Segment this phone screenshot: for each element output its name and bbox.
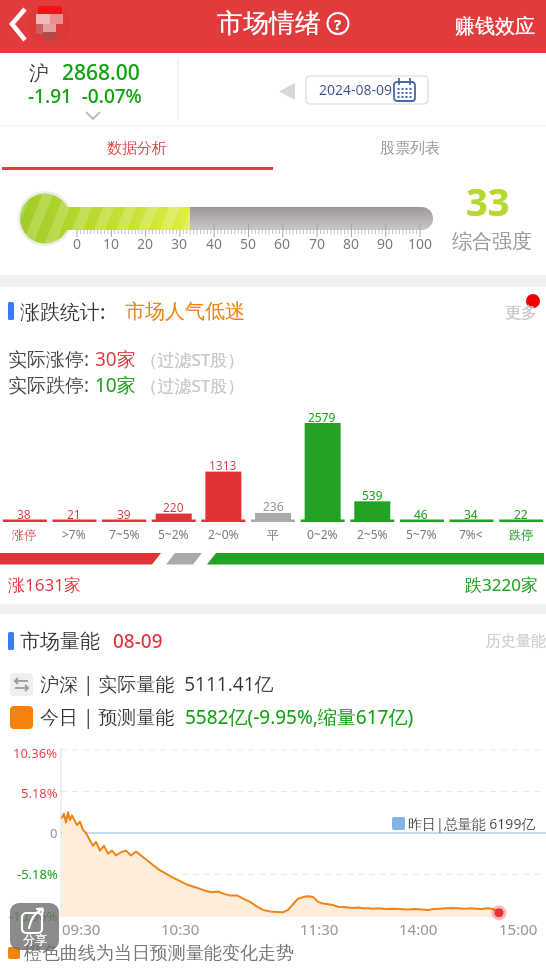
staticText: 0 (50, 824, 58, 842)
staticText: 2868.00 (62, 58, 140, 87)
button[interactable] (306, 76, 428, 104)
staticText: 90 (377, 234, 394, 253)
staticText: 14:00 (399, 919, 438, 939)
staticText: 更多 (505, 303, 537, 323)
staticText: 5~7% (406, 526, 437, 542)
staticText: 市场人气低迷 (125, 299, 245, 324)
staticText: -1.91 -0.07% (28, 83, 142, 109)
staticText: 涨跌统计: (20, 298, 106, 325)
staticText: 38 (17, 506, 31, 522)
staticText: -10.36% (9, 907, 58, 925)
staticText: 7~5% (109, 526, 140, 542)
staticText: 10 (103, 234, 120, 253)
button[interactable]: 历史量能 (468, 626, 546, 656)
staticText: 7%< (459, 526, 483, 542)
staticText: 10.36% (13, 744, 58, 762)
staticText: 橙色曲线为当日预测量能变化走势 (24, 942, 294, 965)
staticText: 21 (67, 506, 81, 522)
staticText: （过滤ST股） (136, 348, 245, 371)
staticText: 39 (117, 506, 131, 522)
staticText: 跌3220家 (465, 573, 538, 596)
staticText: 22 (514, 506, 528, 522)
staticText: 08-09 (113, 628, 163, 654)
staticText: 0 (73, 234, 82, 253)
staticText: 60 (274, 234, 291, 253)
staticText: 5~2% (158, 526, 189, 542)
staticText: 历史量能 (486, 632, 546, 651)
button[interactable]: 股票列表 (273, 127, 546, 170)
staticText: 100 (408, 234, 433, 253)
staticText: 539 (362, 487, 383, 503)
staticText: 80 (343, 234, 360, 253)
staticText: 30家 (95, 346, 136, 372)
staticText: 30 (171, 234, 188, 253)
staticText: 0~2% (307, 526, 338, 542)
staticText: 今日 | 预测量能 (40, 704, 185, 730)
staticText: 昨日|总量能 6199亿 (408, 814, 536, 833)
staticText: 70 (309, 234, 326, 253)
staticText: 跌停 (509, 527, 533, 542)
staticText: 涨1631家 (8, 573, 81, 596)
staticText: ? (334, 14, 342, 34)
staticText: 市场情绪 (217, 7, 321, 40)
staticText: 综合强度 (452, 229, 532, 254)
staticText: 50 (240, 234, 257, 253)
staticText: 2~5% (357, 526, 388, 542)
staticText: 09:30 (62, 919, 101, 939)
staticText: 20 (137, 234, 154, 253)
staticText: 2024-08-09 (319, 80, 393, 99)
staticText: 11:30 (300, 919, 339, 939)
staticText: 1313 (209, 457, 237, 473)
staticText: -5.18% (17, 865, 58, 883)
staticText: 沪 (29, 61, 49, 86)
staticText: 平 (267, 527, 279, 542)
button[interactable]: 更多 (505, 296, 546, 330)
staticText: 40 (206, 234, 223, 253)
staticText: 15:00 (499, 919, 538, 939)
staticText: 46 (414, 506, 428, 522)
staticText: 33 (466, 175, 510, 227)
staticText: 分享 (23, 932, 47, 947)
staticText: 数据分析 (107, 139, 167, 158)
staticText: 市场量能 (20, 629, 100, 654)
staticText: 34 (464, 506, 478, 522)
staticText: 沪深 | 实际量能 5111.41亿 (40, 671, 274, 697)
staticText: 实际涨停: (8, 346, 95, 372)
button[interactable]: 赚钱效应 (445, 2, 545, 50)
staticText: 5.18% (21, 784, 58, 802)
staticText: 实际跌停: (8, 372, 95, 398)
staticText: 赚钱效应 (455, 14, 535, 39)
staticText: 5582亿(-9.95%,缩量617亿) (185, 704, 414, 730)
staticText: 10家 (95, 372, 136, 398)
button[interactable]: 数据分析 (0, 127, 273, 170)
staticText: （过滤ST股） (136, 374, 245, 397)
button[interactable] (20, 56, 170, 120)
staticText: 220 (163, 499, 184, 515)
staticText: 2579 (308, 409, 336, 425)
staticText: >7% (62, 526, 86, 542)
button[interactable]: 分享 (10, 903, 59, 950)
button[interactable] (0, 0, 80, 53)
staticText: 涨停 (12, 527, 36, 542)
staticText: 236 (263, 498, 284, 514)
staticText: 股票列表 (380, 139, 440, 158)
staticText: 10:30 (161, 919, 200, 939)
staticText: 2~0% (208, 526, 239, 542)
